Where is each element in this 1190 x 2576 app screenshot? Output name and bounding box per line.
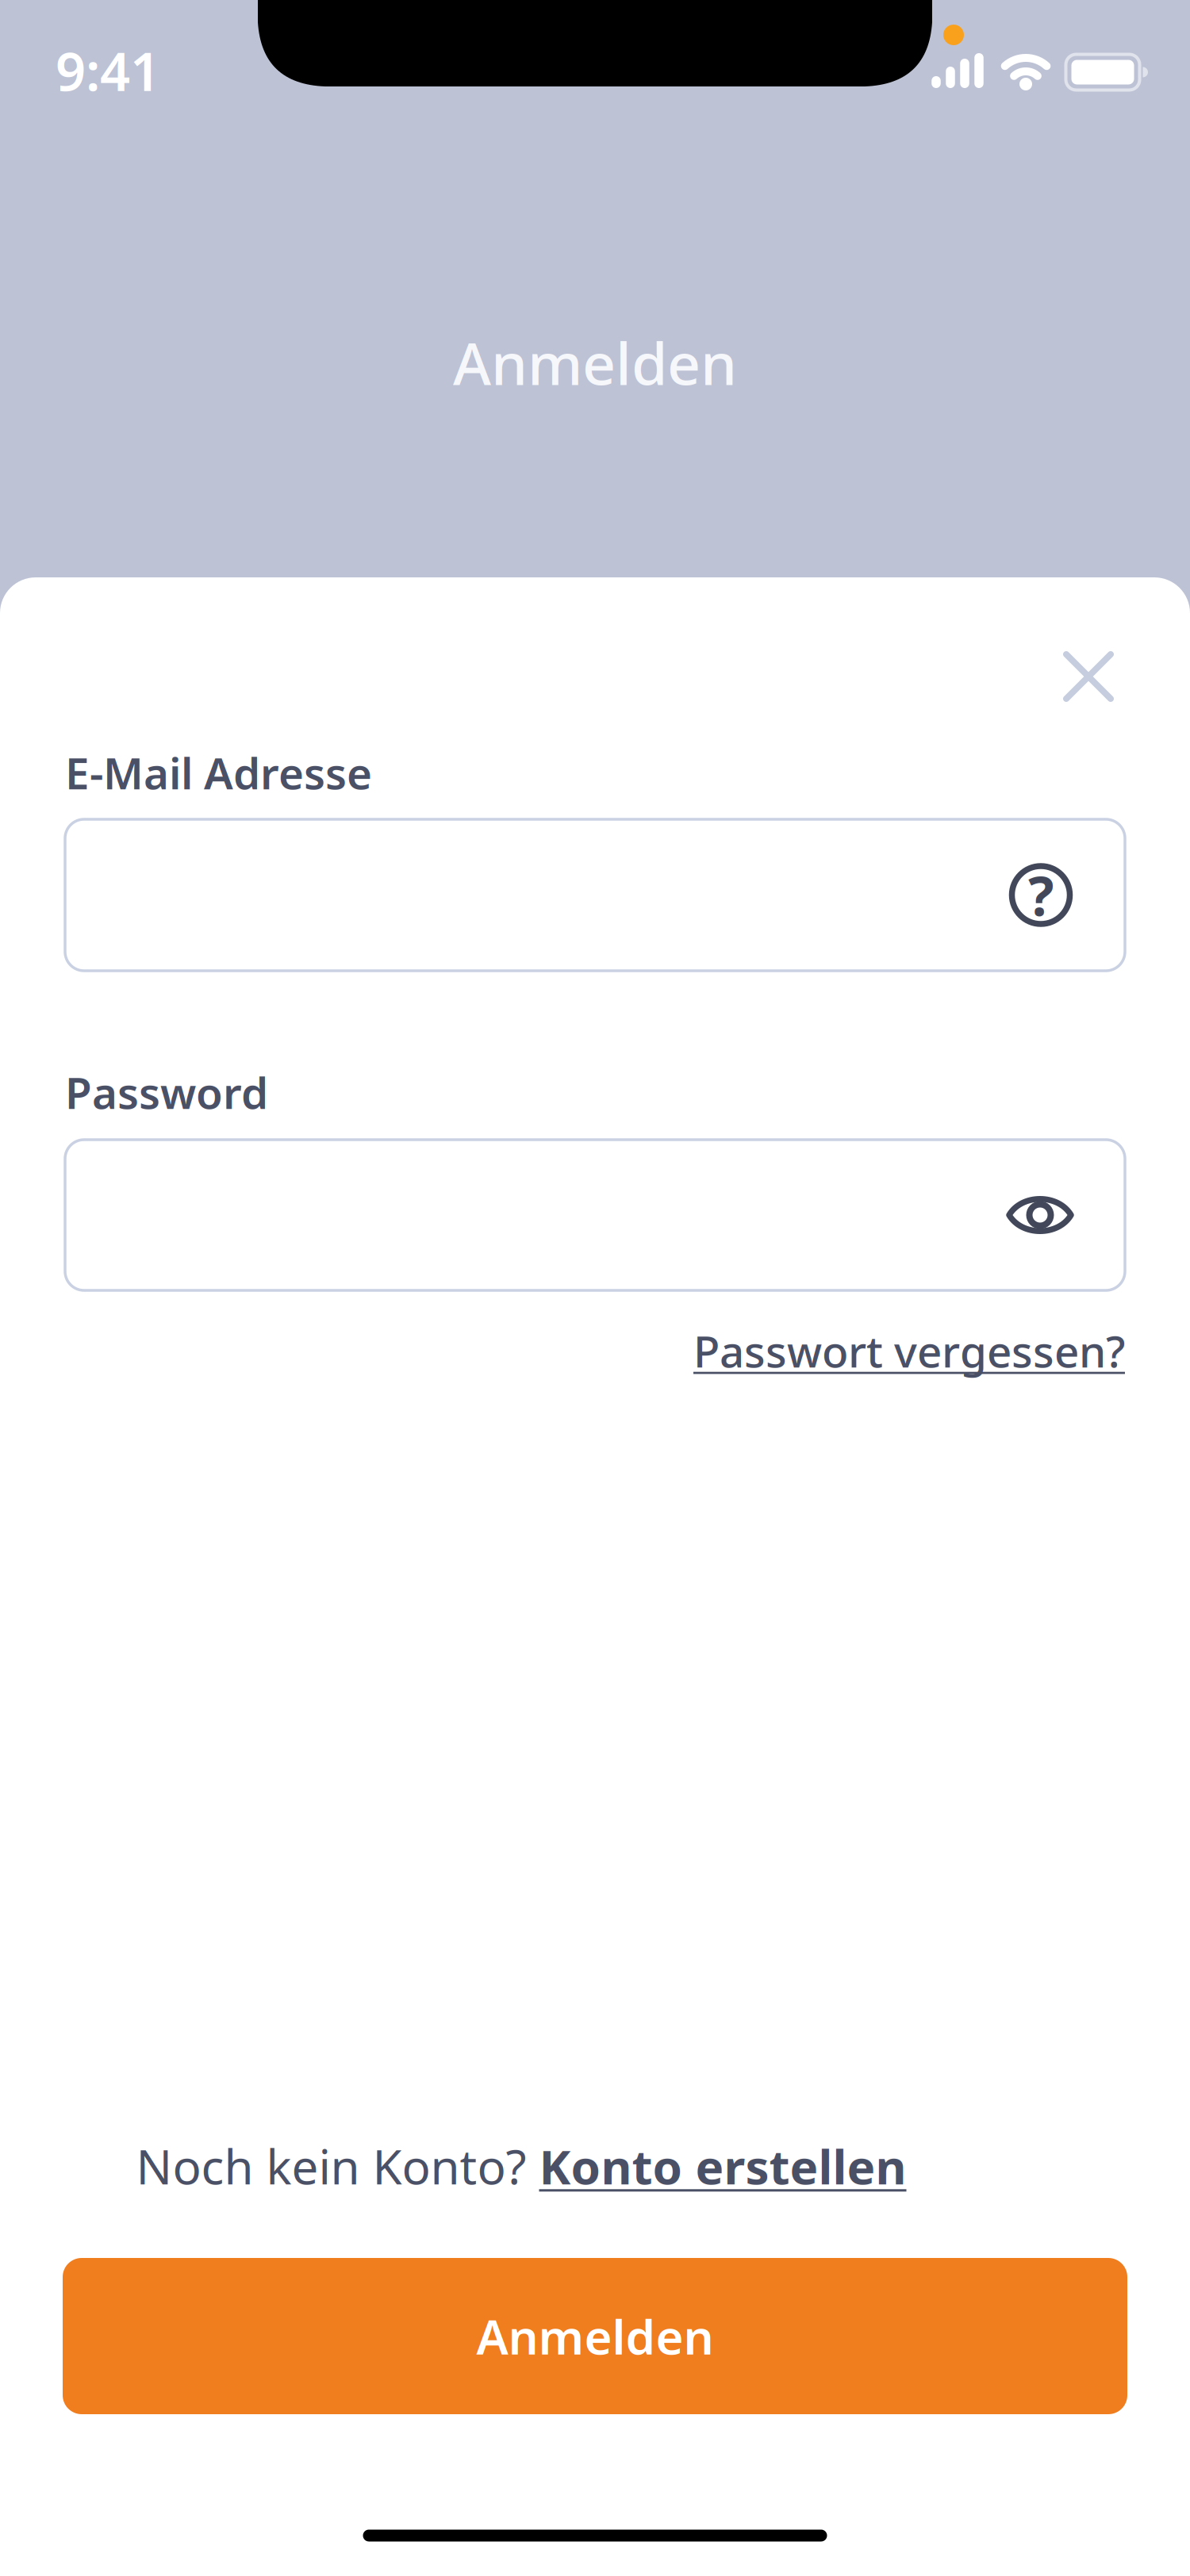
staticText: 9:41 [56, 35, 160, 106]
staticText: Konto erstellen [539, 2134, 906, 2198]
staticText: ? [1028, 859, 1054, 931]
staticText: Anmelden [476, 2305, 714, 2368]
button[interactable]: ? [65, 819, 1125, 971]
button[interactable] [1063, 651, 1114, 702]
button[interactable]: Passwort vergessen? [693, 1322, 1125, 1379]
button[interactable]: Anmelden [63, 2258, 1127, 2414]
button[interactable] [65, 1140, 1125, 1290]
staticText: E-Mail Adresse [65, 744, 372, 801]
staticText: Passwort vergessen? [693, 1322, 1125, 1379]
staticText: Password [65, 1063, 268, 1121]
staticText: Noch kein Konto? [136, 2134, 526, 2198]
button[interactable]: Konto erstellen [539, 2134, 906, 2198]
staticText: Anmelden [453, 324, 737, 401]
